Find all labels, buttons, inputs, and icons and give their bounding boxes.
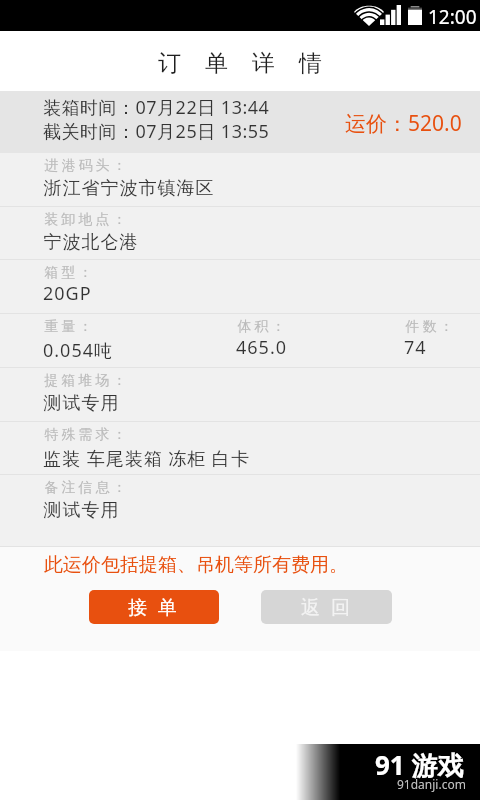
other: Battery	[408, 6, 422, 25]
staticText: 监装 车尾装箱 冻柜 白卡	[43, 446, 251, 471]
button[interactable]: 返 回	[261, 590, 392, 624]
staticText: 装箱时间：07月22日 13:44	[43, 95, 270, 120]
staticText: 件数：	[404, 318, 455, 336]
staticText: 465.0	[236, 335, 288, 360]
staticText: 测试专用	[43, 499, 119, 522]
staticText: 订 单 详 情	[158, 46, 331, 77]
staticText: 12:00	[428, 4, 477, 30]
staticText: 体积：	[236, 318, 287, 336]
staticText: 进港码头：	[43, 157, 128, 175]
staticText: 91 游戏	[375, 747, 464, 783]
staticText: 提箱堆场：	[43, 372, 128, 390]
staticText: 0.054吨	[43, 338, 114, 363]
other: Mobile signal strength	[380, 5, 401, 25]
staticText: 此运价包括提箱、吊机等所有费用。	[44, 553, 348, 577]
button[interactable]: 接 单	[89, 590, 219, 624]
button[interactable]: 特殊需求：	[0, 422, 480, 476]
staticText: 返 回	[301, 594, 353, 620]
staticText: 20GP	[43, 281, 92, 306]
staticText: 运价：520.0	[345, 109, 462, 138]
staticText: 特殊需求：	[43, 426, 128, 444]
staticText: 箱型：	[43, 264, 94, 282]
staticText: 装卸地点：	[43, 211, 128, 229]
button[interactable]: 进港码头：	[0, 153, 480, 207]
staticText: 接 单	[128, 594, 180, 620]
staticText: 91danji.com	[397, 776, 466, 792]
staticText: 测试专用	[43, 392, 119, 415]
button[interactable]: 备注信息：	[0, 475, 480, 547]
staticText: 备注信息：	[43, 479, 128, 497]
staticText: 宁波北仑港	[43, 231, 138, 254]
button[interactable]: 装卸地点：	[0, 207, 480, 261]
other: Wi-Fi signal	[354, 5, 384, 26]
staticText: 截关时间：07月25日 13:55	[43, 119, 270, 144]
staticText: 重量：	[43, 318, 94, 336]
button[interactable]: 提箱堆场：	[0, 368, 480, 422]
staticText: 浙江省宁波市镇海区	[43, 177, 214, 200]
staticText: 74	[404, 335, 427, 360]
button[interactable]: 箱型：	[0, 260, 480, 314]
